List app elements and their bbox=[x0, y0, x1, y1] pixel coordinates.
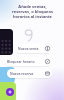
button[interactable]: Bloquear horario bbox=[4, 57, 52, 66]
button[interactable]: Nueva reserva bbox=[7, 69, 52, 78]
button[interactable]: Add bbox=[6, 88, 14, 96]
staticText: Nueva reserva bbox=[10, 71, 34, 76]
button[interactable]: Nueva venta bbox=[15, 44, 52, 53]
staticText: Nueva venta bbox=[18, 46, 39, 51]
staticText: Bloquear horario bbox=[7, 59, 35, 64]
staticText: Añade ventas, reservas, o bloqueos horar… bbox=[12, 4, 53, 19]
